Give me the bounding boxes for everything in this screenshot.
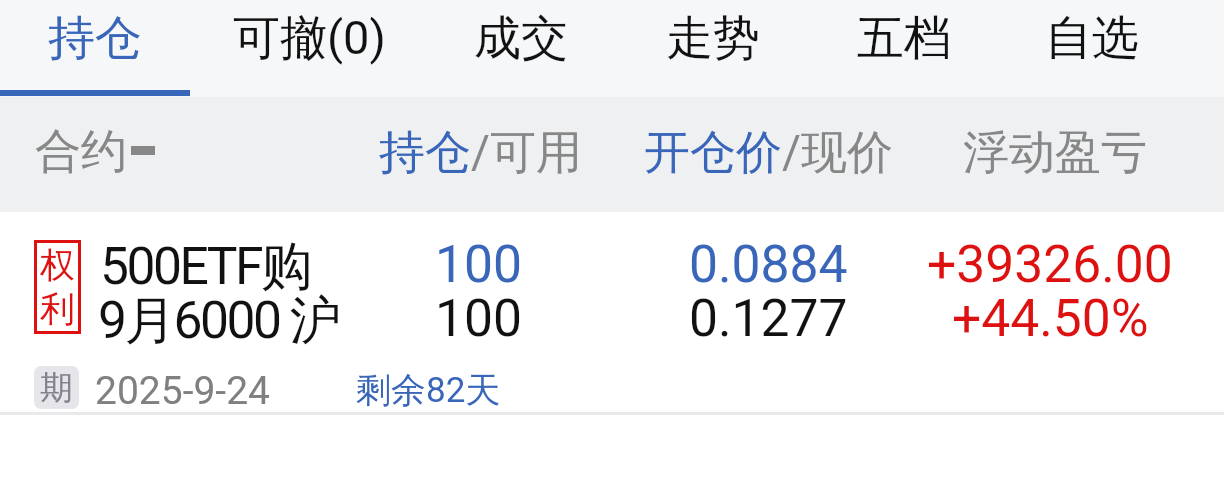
staticText: 100 xyxy=(435,288,522,348)
staticText: 2025-9-24 xyxy=(95,368,270,414)
staticText: 可撤(0) xyxy=(233,9,386,68)
button[interactable]: 持仓/可用 xyxy=(362,95,598,210)
staticText: 持仓 xyxy=(48,9,142,68)
button[interactable]: 自选 xyxy=(994,0,1189,77)
staticText: 合约 xyxy=(35,123,127,181)
button[interactable]: 五档 xyxy=(809,0,999,77)
staticText: 开仓价/现价 xyxy=(644,124,893,182)
button[interactable]: 可撤(0) xyxy=(190,0,428,77)
staticText: 期 xyxy=(40,367,73,409)
staticText: 成交 xyxy=(474,9,568,68)
button[interactable]: 权 xyxy=(0,212,1224,412)
staticText: +44.50% xyxy=(952,288,1149,348)
staticText: 9月6000 沪 xyxy=(98,288,339,353)
button[interactable]: 合约 排序 xyxy=(0,97,360,212)
button[interactable]: 开仓价/现价 xyxy=(596,95,940,210)
staticText: 持仓/可用 xyxy=(379,124,582,182)
button[interactable]: 成交 xyxy=(428,0,614,77)
staticText: 剩余82天 xyxy=(356,368,501,412)
button[interactable]: 走势 xyxy=(618,0,808,77)
staticText: 自选 xyxy=(1045,9,1139,68)
staticText: 500ETF购 xyxy=(100,234,311,299)
button[interactable]: 持仓 xyxy=(0,0,190,77)
staticText: +39326.00 xyxy=(927,234,1173,294)
staticText: 0.1277 xyxy=(689,288,848,348)
staticText: 100 xyxy=(435,234,522,294)
button[interactable]: 浮动盈亏 xyxy=(940,95,1170,210)
staticText: 五档 xyxy=(857,9,951,68)
staticText: 权 xyxy=(40,243,75,287)
staticText: 浮动盈亏 xyxy=(963,124,1147,182)
staticText: 利 xyxy=(40,287,75,331)
staticText: 走势 xyxy=(666,9,760,68)
staticText: 0.0884 xyxy=(689,234,848,294)
